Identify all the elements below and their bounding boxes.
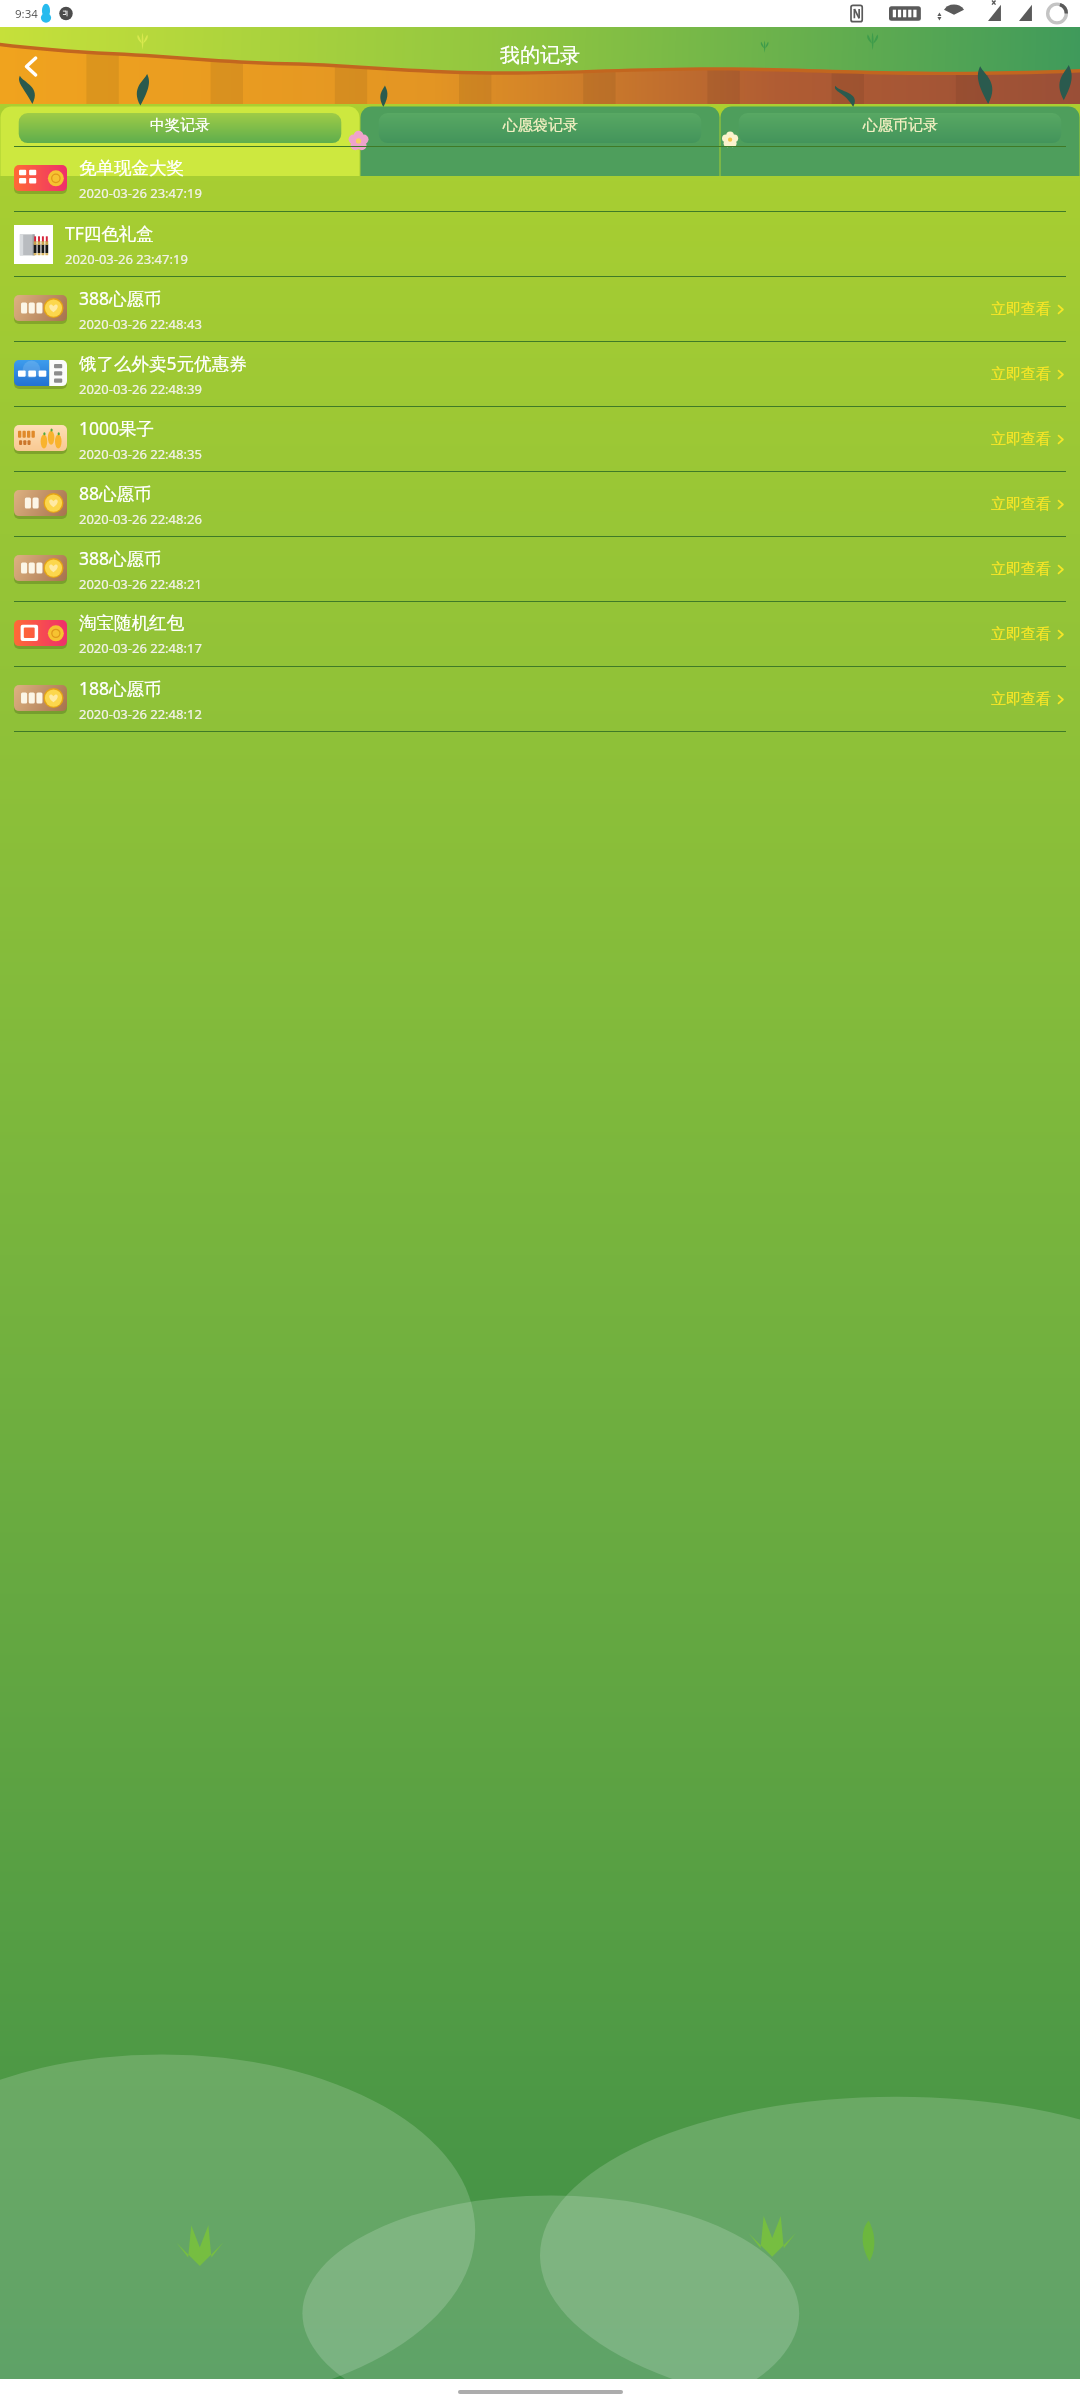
staticText: 立即查看 bbox=[991, 690, 1051, 709]
staticText: 立即查看 bbox=[991, 625, 1051, 644]
staticText: TF四色礼盒 bbox=[65, 221, 154, 245]
staticText: 88心愿币 bbox=[79, 481, 152, 505]
button[interactable]: 388心愿币 bbox=[0, 277, 1080, 341]
staticText: 388心愿币 bbox=[79, 286, 162, 310]
staticText: 2020-03-26 22:48:35 bbox=[79, 445, 202, 463]
staticText: 2020-03-26 22:48:43 bbox=[79, 315, 202, 333]
staticText: 立即查看 bbox=[991, 560, 1051, 579]
button[interactable]: 心愿币记录 bbox=[720, 104, 1080, 146]
staticText: 2020-03-26 22:48:12 bbox=[79, 705, 202, 723]
staticText: 心愿币记录 bbox=[863, 116, 938, 135]
staticText: 我的记录 bbox=[500, 43, 580, 68]
button[interactable]: 心愿袋记录 bbox=[360, 104, 720, 146]
staticText: 饿了么外卖5元优惠券 bbox=[79, 351, 247, 375]
staticText: 188心愿币 bbox=[79, 676, 162, 700]
button[interactable]: 淘宝随机红包 bbox=[0, 602, 1080, 666]
staticText: 中奖记录 bbox=[150, 116, 210, 135]
staticText: 心愿袋记录 bbox=[503, 116, 578, 135]
staticText: 免单现金大奖 bbox=[79, 157, 184, 179]
staticText: 2020-03-26 23:47:19 bbox=[79, 184, 202, 202]
staticText: 2020-03-26 23:47:19 bbox=[65, 250, 188, 268]
button[interactable]: 388心愿币 bbox=[0, 537, 1080, 601]
button[interactable]: 88心愿币 bbox=[0, 472, 1080, 536]
staticText: 淘宝随机红包 bbox=[79, 612, 184, 634]
staticText: 2020-03-26 22:48:21 bbox=[79, 575, 202, 593]
staticText: 立即查看 bbox=[991, 365, 1051, 384]
button[interactable]: 中奖记录 bbox=[0, 104, 360, 146]
staticText: 2020-03-26 22:48:26 bbox=[79, 510, 202, 528]
staticText: 立即查看 bbox=[991, 430, 1051, 449]
staticText: 1000果子 bbox=[79, 416, 155, 440]
staticText: 立即查看 bbox=[991, 300, 1051, 319]
staticText: 9:34 bbox=[15, 6, 38, 22]
button[interactable]: 188心愿币 bbox=[0, 667, 1080, 731]
button[interactable]: 饿了么外卖5元优惠券 bbox=[0, 342, 1080, 406]
button[interactable]: 1000果子 bbox=[0, 407, 1080, 471]
staticText: 立即查看 bbox=[991, 495, 1051, 514]
staticText: 388心愿币 bbox=[79, 546, 162, 570]
staticText: 2020-03-26 22:48:39 bbox=[79, 380, 202, 398]
staticText: 2020-03-26 22:48:17 bbox=[79, 639, 202, 657]
button[interactable]: Back bbox=[7, 42, 55, 90]
button[interactable]: TF四色礼盒 bbox=[0, 212, 1080, 276]
button[interactable]: 免单现金大奖 bbox=[0, 147, 1080, 211]
